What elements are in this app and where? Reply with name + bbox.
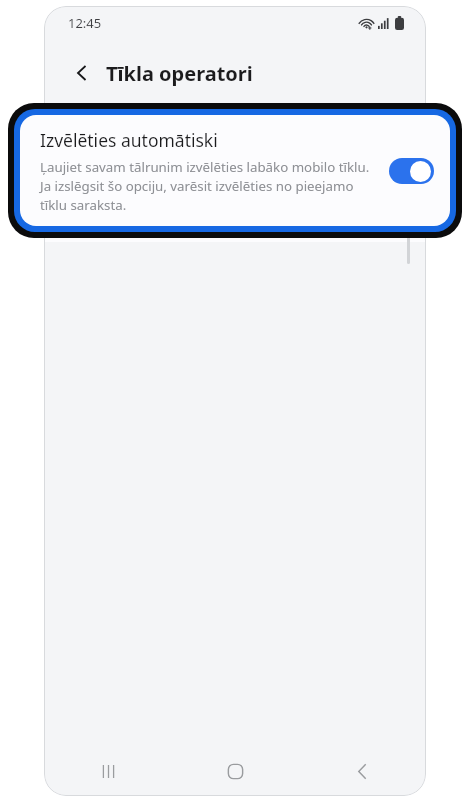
staticText: 12:45 [68,14,102,32]
button[interactable]: Izvēlēties automātiski [20,115,450,226]
button[interactable]: Izvēlēties automātiski [44,106,426,242]
staticText: Tīkla operatori [106,60,253,87]
staticText: Izvēlēties automātiski [66,131,244,155]
staticText: Ļaujiet savam tālrunim izvēlēties labāko… [66,162,349,218]
button[interactable]: Select automatically toggle, on [363,161,408,187]
button[interactable]: Back [66,57,98,89]
button[interactable]: Back [299,748,426,794]
button[interactable]: Select automatically toggle, on [389,158,434,184]
staticText: Ļaujiet savam tālrunim izvēlēties labāko… [40,158,377,214]
button[interactable]: Recents [44,748,172,794]
button[interactable]: Home [172,748,299,794]
staticText: Izvēlēties automātiski [40,128,218,152]
